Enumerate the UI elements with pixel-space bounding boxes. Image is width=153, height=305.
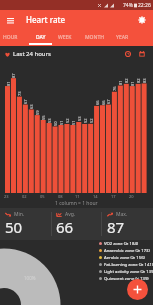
staticText: 66 xyxy=(95,100,100,105)
button[interactable]: Add measurement xyxy=(127,279,148,300)
staticText: HOUR xyxy=(3,34,18,41)
staticText: 76 xyxy=(112,86,117,91)
staticText: Quiescent zone (< 139) xyxy=(104,276,149,282)
staticText: 55 xyxy=(41,115,46,120)
staticText: Fat-burning zone (≥ 141) xyxy=(104,262,153,268)
staticText: 100% xyxy=(24,275,36,281)
staticText: 22:26 xyxy=(138,2,151,9)
staticText: 51 xyxy=(71,120,76,125)
staticText: 50 xyxy=(53,121,58,126)
staticText: 02 xyxy=(22,194,27,199)
staticText: 17 xyxy=(111,194,116,199)
staticText: 66 xyxy=(101,100,106,105)
staticText: 66 xyxy=(56,217,74,237)
button[interactable]: Choose date xyxy=(136,48,148,60)
staticText: Last 24 hours xyxy=(13,50,51,58)
staticText: 53 xyxy=(77,116,82,121)
staticText: 11 xyxy=(75,194,80,199)
staticText: 53 xyxy=(47,118,52,123)
button[interactable]: HOUR xyxy=(0,30,29,46)
staticText: Avg. xyxy=(65,211,76,218)
staticText: 67 xyxy=(23,99,28,104)
staticText: 87 xyxy=(11,73,16,78)
button[interactable]: Settings xyxy=(135,13,149,27)
staticText: VO2 zone (≥ 184) xyxy=(104,241,139,247)
staticText: Heart rate xyxy=(26,14,66,25)
staticText: 82 xyxy=(136,78,141,83)
staticText: 50 xyxy=(5,217,23,237)
staticText: 81 xyxy=(130,81,135,86)
button[interactable]: Quiescent zone (< 139) xyxy=(99,275,149,282)
button[interactable]: History xyxy=(122,48,134,60)
button[interactable]: VO2 zone (≥ 184) xyxy=(99,240,139,247)
staticText: 52 xyxy=(89,118,94,123)
staticText: Max. xyxy=(116,211,128,218)
staticText: Light activity zone (≥ 139) xyxy=(104,269,153,275)
staticText: 52 xyxy=(65,118,70,123)
staticText: DAY xyxy=(36,34,46,41)
button[interactable]: Light activity zone (≥ 139) xyxy=(99,268,153,275)
staticText: 52 xyxy=(83,118,88,123)
button[interactable]: Open navigation menu xyxy=(3,13,17,27)
staticText: 23 xyxy=(4,194,9,199)
staticText: 83 xyxy=(142,78,147,83)
staticText: MONTH xyxy=(85,34,104,41)
button[interactable]: DAY xyxy=(29,30,52,46)
staticText: WEEK xyxy=(58,34,72,41)
button[interactable]: Avg. xyxy=(51,208,102,240)
button[interactable]: YEAR xyxy=(112,30,132,46)
staticText: 81 xyxy=(118,80,123,85)
staticText: 08 xyxy=(58,194,63,199)
staticText: 20 xyxy=(129,194,134,199)
button[interactable]: Anaerobic zone (≥ 173) xyxy=(99,247,150,254)
staticText: 74% xyxy=(123,2,133,9)
staticText: 1 column = 1 hour xyxy=(55,200,98,207)
staticText: 59 xyxy=(35,110,40,115)
button[interactable]: MONTH xyxy=(76,30,112,46)
staticText: Aerobic zone (≥ 156) xyxy=(104,255,145,261)
staticText: 67 xyxy=(106,99,111,104)
button[interactable]: Fat-burning zone (≥ 141) xyxy=(99,261,153,268)
staticText: 51 xyxy=(59,120,64,125)
staticText: 81 xyxy=(6,81,11,86)
staticText: 05 xyxy=(40,194,45,199)
button[interactable]: Min. xyxy=(0,208,51,240)
staticText: YEAR xyxy=(116,34,129,41)
staticText: 87 xyxy=(107,217,125,237)
staticText: 82 xyxy=(124,78,129,83)
button[interactable]: Max. xyxy=(102,208,153,240)
staticText: 14 xyxy=(93,194,98,199)
button[interactable]: WEEK xyxy=(52,30,77,46)
staticText: 73 xyxy=(17,91,22,96)
staticText: 63 xyxy=(29,104,34,109)
button[interactable]: Aerobic zone (≥ 156) xyxy=(99,254,145,261)
staticText: Anaerobic zone (≥ 173) xyxy=(104,248,150,254)
staticText: Min. xyxy=(14,211,25,218)
